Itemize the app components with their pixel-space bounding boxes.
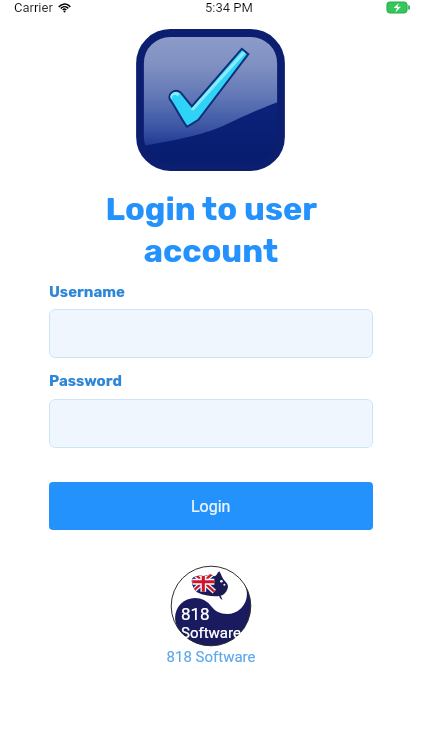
staticText: Login to user account <box>44 190 378 270</box>
staticText: 5:34 PM <box>205 0 253 15</box>
other: App logo <box>140 33 281 167</box>
button[interactable]: Login <box>49 482 373 530</box>
staticText: Login <box>191 497 231 516</box>
staticText: Username <box>49 283 125 301</box>
staticText: Carrier <box>14 0 53 15</box>
staticText: 818 <box>181 604 210 624</box>
staticText: Password <box>49 372 122 390</box>
button[interactable]: 818 Software <box>170 565 252 647</box>
button[interactable] <box>49 309 373 358</box>
staticText: 818 Software <box>0 648 422 666</box>
button[interactable] <box>49 399 373 448</box>
staticText: Software <box>181 624 241 642</box>
